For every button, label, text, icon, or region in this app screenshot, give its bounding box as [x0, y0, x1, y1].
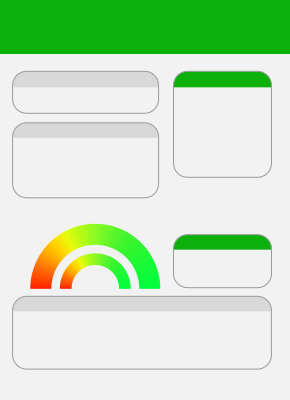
- button[interactable]: Card: [13, 71, 159, 113]
- button[interactable]: Card: [173, 71, 271, 177]
- button[interactable]: Card: [13, 296, 271, 369]
- button[interactable]: Card: [173, 235, 271, 288]
- button[interactable]: Card: [13, 123, 159, 198]
